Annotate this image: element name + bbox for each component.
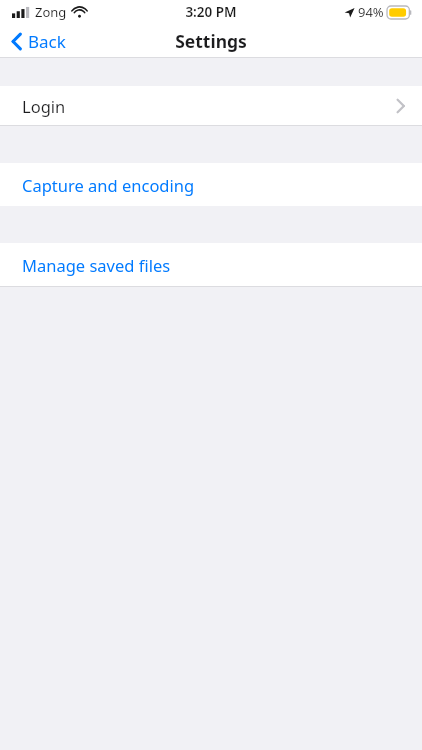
staticText: Back [28, 30, 66, 53]
staticText: 3:20 PM [185, 3, 237, 21]
staticText: Login [22, 95, 66, 117]
button[interactable]: Back [0, 26, 76, 57]
staticText: Manage saved files [22, 254, 171, 276]
staticText: Settings [175, 29, 247, 53]
staticText: Zong [35, 3, 67, 21]
staticText: 94% [358, 3, 384, 21]
button[interactable]: Login [0, 86, 422, 125]
button[interactable]: Manage saved files [0, 243, 422, 286]
staticText: Capture and encoding [22, 174, 195, 196]
other: Back [11, 31, 24, 52]
button[interactable]: Capture and encoding [0, 163, 422, 206]
